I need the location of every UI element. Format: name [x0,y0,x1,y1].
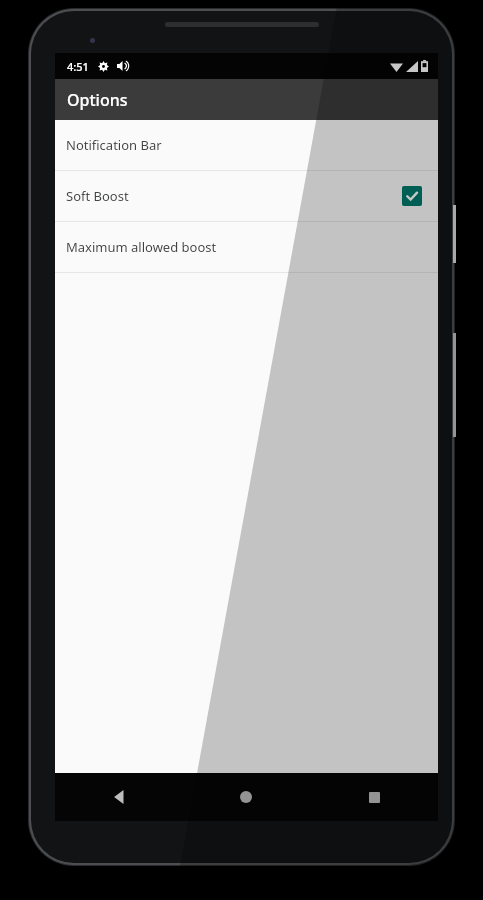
staticText: Options [67,89,128,111]
staticText: Maximum allowed boost [66,238,217,256]
button[interactable]: Recent apps [310,773,438,821]
button[interactable]: Soft Boost [55,171,438,221]
button[interactable]: Maximum allowed boost [55,222,438,272]
button[interactable]: Soft Boost enabled [402,186,422,206]
staticText: 4:51 [67,59,89,74]
staticText: Soft Boost [66,187,129,205]
button[interactable]: Notification Bar [55,120,438,170]
button[interactable]: Back [55,773,182,821]
staticText: Notification Bar [66,136,162,154]
button[interactable]: Home [182,773,310,821]
